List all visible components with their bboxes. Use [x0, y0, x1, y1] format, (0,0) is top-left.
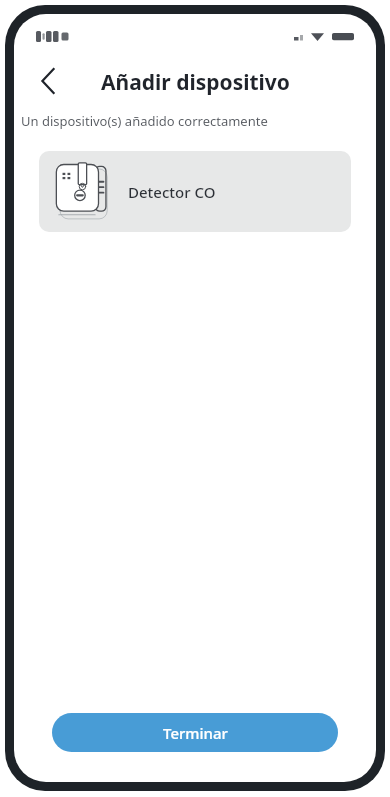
staticText: Un dispositivo(s) añadido correctamente: [21, 112, 268, 130]
staticText: Añadir dispositivo: [101, 68, 290, 97]
staticText: Detector CO: [128, 182, 216, 202]
button[interactable]: Terminar: [52, 713, 338, 752]
button[interactable]: Back: [28, 61, 68, 101]
staticText: Terminar: [163, 723, 228, 743]
button[interactable]: Detector CO: [39, 151, 351, 232]
